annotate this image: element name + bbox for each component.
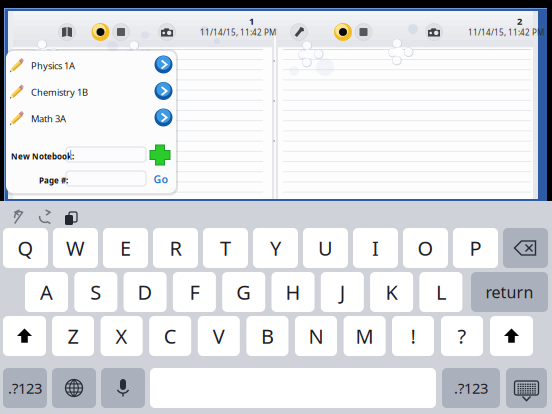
button[interactable]: K <box>370 272 413 312</box>
button[interactable]: return <box>471 272 548 312</box>
button[interactable]: .?123 <box>442 368 500 408</box>
staticText: F <box>189 279 199 305</box>
button[interactable]: Stop <box>112 23 129 40</box>
button[interactable]: Q <box>3 228 48 268</box>
staticText: Go <box>153 172 168 186</box>
staticText: T <box>220 235 231 261</box>
staticText: J <box>340 279 345 305</box>
staticText: W <box>66 235 85 261</box>
button[interactable]: X <box>101 316 143 356</box>
staticText: M <box>356 323 374 349</box>
button[interactable]: Stop <box>355 23 372 40</box>
staticText: Math 3A <box>31 112 66 125</box>
button[interactable]: R <box>153 228 198 268</box>
button[interactable]: I <box>353 228 398 268</box>
button[interactable]: G <box>222 272 265 312</box>
button[interactable]: T <box>203 228 248 268</box>
button[interactable]: Dictation <box>101 368 145 408</box>
staticText: 1 <box>249 15 254 27</box>
staticText: I <box>372 235 379 261</box>
staticText: G <box>236 279 251 305</box>
staticText: N <box>308 323 323 349</box>
staticText: ? <box>457 323 466 349</box>
button[interactable]: Hide keyboard <box>506 368 547 408</box>
staticText: B <box>261 323 274 349</box>
staticText: return <box>485 281 533 303</box>
button[interactable]: Bookmarks <box>58 23 75 40</box>
button[interactable]: ! <box>392 316 434 356</box>
button[interactable]: Paste <box>57 205 81 229</box>
button[interactable]: Physics 1A <box>6 51 176 77</box>
button[interactable]: Shift <box>490 316 533 356</box>
button[interactable]: Undo <box>8 205 32 229</box>
staticText: U <box>318 235 333 261</box>
button[interactable]: E <box>103 228 148 268</box>
staticText: D <box>138 279 153 305</box>
staticText: E <box>120 235 131 261</box>
button[interactable]: V <box>198 316 240 356</box>
staticText: .?123 <box>8 378 42 398</box>
staticText: ! <box>410 323 415 349</box>
button[interactable]: Language <box>52 368 96 408</box>
button[interactable]: N <box>295 316 337 356</box>
button[interactable]: J <box>321 272 364 312</box>
staticText: 11/14/15, 11:42 PM <box>468 27 544 38</box>
staticText: V <box>213 323 225 349</box>
button[interactable]: P <box>453 228 498 268</box>
staticText: C <box>164 323 177 349</box>
staticText: Chemistry 1B <box>31 86 88 98</box>
button[interactable]: .?123 <box>3 368 47 408</box>
staticText: H <box>285 279 300 305</box>
button[interactable]: B <box>246 316 288 356</box>
staticText: R <box>169 235 181 261</box>
button[interactable]: Shift <box>3 316 46 356</box>
button[interactable]: O <box>403 228 448 268</box>
staticText: X <box>116 323 128 349</box>
button[interactable]: S <box>74 272 117 312</box>
button[interactable]: W <box>53 228 98 268</box>
button[interactable]: Record <box>334 23 352 41</box>
staticText: Q <box>17 235 33 261</box>
button[interactable]: L <box>419 272 462 312</box>
staticText: 2 <box>517 15 522 27</box>
button[interactable]: F <box>173 272 216 312</box>
staticText: New Notebook: <box>11 151 74 162</box>
staticText: Z <box>67 323 78 349</box>
staticText: A <box>40 279 53 305</box>
staticText: K <box>386 279 398 305</box>
staticText: Physics 1A <box>31 59 75 72</box>
button[interactable]: M <box>344 316 386 356</box>
button[interactable]: D <box>124 272 167 312</box>
staticText: 11/14/15, 11:42 PM <box>200 27 276 38</box>
staticText: P <box>469 235 481 261</box>
staticText: S <box>90 279 101 305</box>
button[interactable]: Chemistry 1B <box>6 78 176 104</box>
button[interactable]: Y <box>253 228 298 268</box>
button[interactable]: Go <box>151 172 171 186</box>
button[interactable]: Backspace <box>503 228 548 268</box>
button[interactable]: Camera <box>158 23 175 40</box>
button[interactable]: Settings <box>290 23 307 40</box>
staticText: Page #: <box>39 175 68 186</box>
button[interactable]: Add notebook <box>150 145 170 165</box>
button[interactable]: U <box>303 228 348 268</box>
staticText: L <box>436 279 446 305</box>
staticText: O <box>417 235 433 261</box>
button[interactable]: Camera <box>425 23 442 40</box>
button[interactable]: Math 3A <box>6 104 176 130</box>
button[interactable]: Redo <box>33 205 57 229</box>
button[interactable]: H <box>271 272 314 312</box>
button[interactable]: Record <box>91 23 109 41</box>
button[interactable]: ? <box>441 316 483 356</box>
staticText: Y <box>270 235 281 261</box>
staticText: .?123 <box>454 378 488 398</box>
button[interactable]: Z <box>52 316 94 356</box>
button[interactable]: A <box>25 272 68 312</box>
button[interactable]: C <box>149 316 191 356</box>
